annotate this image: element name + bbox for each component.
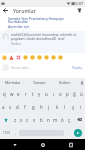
button[interactable]: h [37, 100, 45, 113]
button[interactable]: Home [29, 139, 57, 150]
staticText: l [64, 104, 66, 110]
button[interactable]: q [0, 87, 8, 100]
button[interactable]: Back [0, 7, 11, 14]
button[interactable]: Filter [74, 7, 85, 14]
staticText: ö [61, 117, 64, 123]
button[interactable]: i [77, 100, 85, 113]
button[interactable]: Tamam [26, 78, 52, 87]
staticText: t [32, 91, 34, 97]
button[interactable]: f [21, 100, 29, 113]
staticText: Yorum ekle… [11, 66, 31, 70]
button[interactable]: Merhaba [0, 78, 26, 87]
button[interactable]: ğ [71, 87, 78, 100]
button[interactable]: j [45, 100, 53, 113]
staticText: n [47, 117, 50, 123]
button[interactable]: o [57, 87, 64, 100]
staticText: m [53, 117, 58, 123]
staticText: b [40, 117, 43, 123]
staticText: Merhaba [5, 80, 21, 85]
button[interactable]: Shift [0, 113, 12, 126]
button[interactable]: Emoji [44, 55, 49, 60]
button[interactable]: u [43, 87, 50, 100]
staticText: Paylaş [72, 65, 83, 70]
button[interactable]: c [24, 113, 31, 126]
button[interactable]: Emoji [2, 55, 7, 60]
staticText: j [48, 104, 50, 110]
staticText: u [45, 91, 48, 97]
button[interactable]: t [29, 87, 36, 100]
button[interactable]: Emoji [58, 55, 63, 60]
staticText: ?123 [3, 131, 10, 135]
button[interactable]: Emoji [37, 55, 42, 60]
button[interactable]: ç [66, 113, 73, 126]
button[interactable]: Emoji [16, 55, 21, 60]
staticText: z [14, 117, 17, 123]
staticText: , [15, 130, 17, 135]
button[interactable]: Emoji [23, 55, 28, 60]
button[interactable]: d [14, 100, 21, 113]
button[interactable]: ş [69, 100, 77, 113]
staticText: Yorumlar [13, 7, 36, 14]
staticText: f [24, 104, 26, 110]
button[interactable]: v [31, 113, 38, 126]
button[interactable]: Kullanı [52, 78, 78, 87]
button[interactable]: ö [59, 113, 66, 126]
staticText: k [56, 104, 59, 110]
staticText: i [80, 104, 82, 110]
staticText: r [25, 91, 27, 97]
button[interactable]: Back [0, 139, 29, 150]
button[interactable]: r [22, 87, 29, 100]
button[interactable]: g [29, 100, 37, 113]
button[interactable]: s [7, 100, 14, 113]
staticText: o [59, 91, 62, 97]
button[interactable]: Emoji [9, 55, 14, 60]
staticText: . [67, 130, 69, 135]
button[interactable]: a [0, 100, 7, 113]
staticText: e [17, 91, 20, 97]
staticText: s [9, 104, 12, 110]
button[interactable]: ?123 [0, 126, 12, 139]
staticText: ş [72, 104, 75, 110]
button[interactable]: Emoji [30, 55, 35, 60]
staticText: 20:07 [73, 1, 84, 6]
staticText: x [20, 117, 23, 123]
staticText: mafie0234 bunuhen hoscardear, ethimlik v… [11, 33, 83, 41]
staticText: c [26, 117, 29, 123]
staticText: y [38, 91, 41, 97]
staticText: Ayrıntılar için [8, 24, 30, 29]
button[interactable]: l [61, 100, 69, 113]
button[interactable]: Recents [57, 139, 85, 150]
button[interactable]: Backspace [73, 113, 85, 126]
button[interactable]: e [15, 87, 22, 100]
button[interactable]: Emoji [51, 55, 56, 60]
button[interactable]: Paylaş [72, 65, 83, 70]
button[interactable]: ı [50, 87, 57, 100]
button[interactable]: b [38, 113, 45, 126]
button[interactable]: p [64, 87, 71, 100]
staticText: p [66, 91, 69, 97]
button[interactable]: Voice input [78, 78, 85, 87]
staticText: d [16, 104, 19, 110]
button[interactable]: k [53, 100, 61, 113]
button[interactable]: m [52, 113, 59, 126]
staticText: q [3, 91, 6, 97]
button[interactable]: x [18, 113, 24, 126]
staticText: ü [80, 91, 83, 97]
button[interactable]: Send [74, 129, 82, 137]
staticText: Ali Üyemimek [6, 30, 25, 31]
button[interactable]: w [8, 87, 15, 100]
button[interactable]: z [12, 113, 18, 126]
button[interactable]: ü [78, 87, 85, 100]
button[interactable]: y [36, 87, 43, 100]
staticText: ı [53, 91, 55, 97]
staticText: g [32, 104, 35, 110]
button[interactable]: n [45, 113, 52, 126]
button[interactable]: Comma [12, 126, 19, 139]
staticText: w [10, 91, 14, 97]
staticText: h [40, 104, 43, 110]
button[interactable]: mafie0234 bunuhen hoscardear, ethimlik v… [11, 33, 83, 46]
staticText: ğ [73, 91, 76, 97]
staticText: Yanıtlar [11, 42, 21, 46]
